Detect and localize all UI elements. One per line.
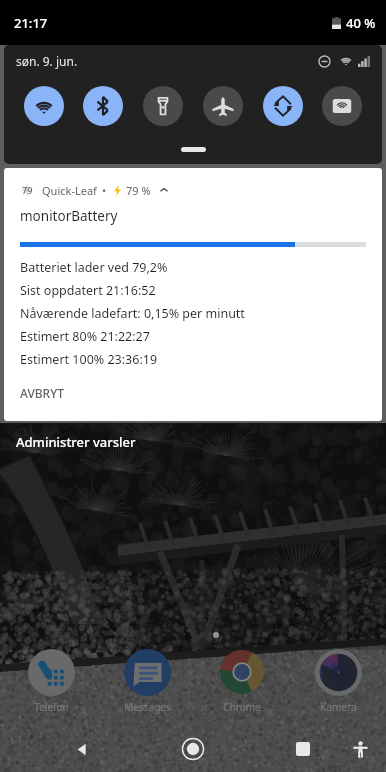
button[interactable]: Quick setting (203, 86, 243, 126)
staticText: Batteriet lader ved 79,2% (20, 259, 168, 276)
staticText: Nåværende ladefart: 0,15% per minutt (20, 305, 245, 322)
button[interactable]: Accessibility (346, 735, 374, 763)
staticText: AVBRYT (20, 385, 64, 401)
staticText: 21:17 (14, 14, 48, 32)
staticText: Quick-Leaf (42, 183, 97, 198)
button[interactable]: Back (66, 734, 96, 764)
button[interactable]: Recent apps (288, 734, 318, 764)
staticText: • (102, 183, 107, 198)
staticText: 79 % (126, 183, 151, 198)
button[interactable]: Home (177, 733, 209, 765)
button[interactable]: Quick setting (263, 86, 303, 126)
button[interactable]: Kamera (308, 648, 368, 714)
staticText: Messages (124, 700, 171, 714)
staticText: Chrome (223, 700, 261, 714)
staticText: Kamera (320, 700, 357, 714)
staticText: Estimert 100% 23:36:19 (20, 351, 158, 368)
button[interactable]: Quick setting (143, 86, 183, 126)
staticText: Estimert 80% 21:22:27 (20, 328, 150, 345)
button[interactable]: Messages (117, 648, 177, 714)
staticText: monitorBattery (20, 207, 118, 225)
button[interactable]: AVBRYT (20, 385, 64, 401)
staticText: 79 (22, 184, 33, 196)
staticText: Telefon (34, 700, 69, 714)
button[interactable]: Quick setting (24, 86, 64, 126)
button[interactable]: Quick setting (322, 86, 362, 126)
staticText: søn. 9. jun. (16, 53, 78, 69)
button[interactable]: Telefon (21, 648, 81, 714)
staticText: Sist oppdatert 21:16:52 (20, 282, 156, 299)
button[interactable]: Quick setting (83, 86, 123, 126)
button[interactable]: Administrer varsler (16, 433, 136, 451)
staticText: 40 % (346, 14, 376, 32)
button[interactable]: Chrome (212, 648, 272, 714)
